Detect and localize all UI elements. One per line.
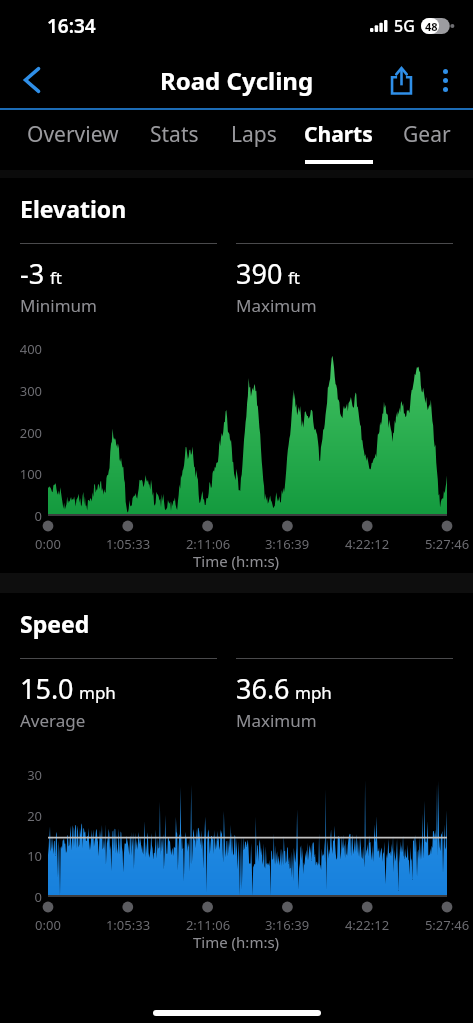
staticText: 300 <box>2 382 42 400</box>
staticText: Speed <box>20 608 90 639</box>
staticText: 0 <box>2 888 42 906</box>
staticText: Charts <box>304 120 373 149</box>
staticText: mph <box>79 681 116 704</box>
button[interactable]: More options <box>425 56 465 104</box>
staticText: Time (h:m:s) <box>193 932 280 952</box>
staticText: 0:00 <box>8 535 88 553</box>
staticText: 48 <box>425 19 438 34</box>
staticText: Maximum <box>236 709 317 732</box>
staticText: Stats <box>150 120 199 149</box>
staticText: 5G <box>394 15 415 37</box>
staticText: Gear <box>403 120 451 149</box>
staticText: Maximum <box>236 294 317 317</box>
button[interactable]: Back <box>8 56 56 104</box>
staticText: 2:11:06 <box>168 535 248 553</box>
staticText: Elevation <box>20 193 127 224</box>
button[interactable]: Overview <box>12 110 133 170</box>
staticText: 4:22:12 <box>327 535 407 553</box>
staticText: 10 <box>2 847 42 865</box>
staticText: 100 <box>2 465 42 483</box>
staticText: 20 <box>2 807 42 825</box>
staticText: Time (h:m:s) <box>193 551 280 571</box>
button[interactable]: Charts <box>292 110 385 170</box>
button[interactable]: Laps <box>215 110 292 170</box>
staticText: 3:16:39 <box>247 916 327 934</box>
staticText: 16:34 <box>47 13 96 39</box>
staticText: 36.6 <box>236 670 290 707</box>
staticText: 3:16:39 <box>247 535 327 553</box>
staticText: -3 <box>20 255 45 292</box>
staticText: Laps <box>231 120 277 149</box>
staticText: 400 <box>2 340 42 358</box>
staticText: 1:05:33 <box>88 916 168 934</box>
staticText: ft <box>50 266 62 289</box>
staticText: 0:00 <box>8 916 88 934</box>
button[interactable]: Gear <box>385 110 469 170</box>
staticText: 4:22:12 <box>327 916 407 934</box>
staticText: 1:05:33 <box>88 535 168 553</box>
staticText: Overview <box>27 120 119 149</box>
staticText: 2:11:06 <box>168 916 248 934</box>
staticText: Average <box>20 709 86 732</box>
staticText: mph <box>295 681 332 704</box>
staticText: 15.0 <box>20 670 74 707</box>
staticText: 30 <box>2 766 42 784</box>
button[interactable]: Stats <box>133 110 215 170</box>
staticText: 390 <box>236 255 283 292</box>
staticText: ft <box>288 266 300 289</box>
button[interactable]: Share <box>377 56 425 104</box>
staticText: 5:27:46 <box>407 535 473 553</box>
staticText: Minimum <box>20 294 97 317</box>
staticText: 0 <box>2 507 42 525</box>
staticText: 200 <box>2 424 42 442</box>
staticText: Road Cycling <box>160 64 314 97</box>
staticText: 5:27:46 <box>407 916 473 934</box>
